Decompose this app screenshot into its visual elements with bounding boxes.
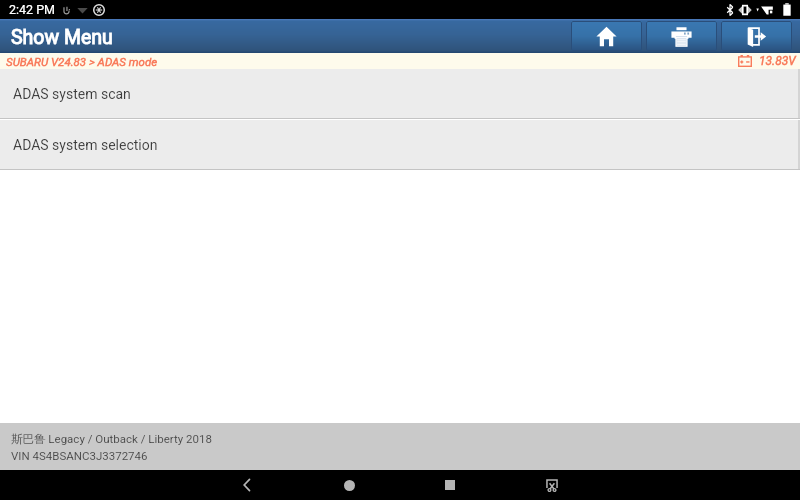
staticText: Show Menu [11,26,113,49]
staticText: 13.83V [759,54,796,68]
staticText: ADAS system scan [13,86,131,102]
button[interactable]: Screenshot [532,470,572,500]
staticText: VIN 4S4BSANC3J3372746 [11,449,148,462]
button[interactable]: Home [329,470,369,500]
button[interactable]: Exit [721,21,792,51]
button[interactable]: ADAS system selection [0,120,798,169]
button[interactable]: Home [571,21,642,51]
staticText: 斯巴鲁 Legacy / Outback / Liberty 2018 [11,432,212,446]
staticText: ADAS system selection [13,137,158,153]
button[interactable]: ADAS system scan [0,69,798,118]
button[interactable]: Recent apps [430,470,470,500]
staticText: 2:42 PM [9,2,56,17]
button[interactable]: Back [227,470,267,500]
button[interactable]: Print [646,21,717,51]
staticText: SUBARU V24.83 > ADAS mode [6,55,158,68]
